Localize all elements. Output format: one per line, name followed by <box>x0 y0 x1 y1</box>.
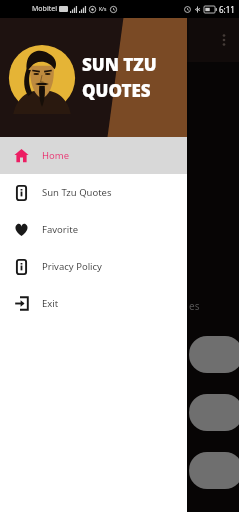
staticText: SUN TZU <box>82 53 157 76</box>
staticText: Exit <box>42 297 59 310</box>
button[interactable] <box>189 336 239 373</box>
staticText: Mobitel <box>32 4 57 14</box>
button[interactable] <box>189 394 239 431</box>
button[interactable]: Home <box>0 137 187 174</box>
button[interactable]: Favorite <box>0 211 187 248</box>
staticText: QUOTES <box>82 79 151 102</box>
staticText: es <box>189 299 200 313</box>
staticText: Sun Tzu Quotes <box>42 186 112 199</box>
button[interactable]: Sun Tzu Quotes <box>0 174 187 211</box>
button[interactable]: Privacy Policy <box>0 248 187 285</box>
button[interactable]: More options <box>212 28 236 52</box>
button[interactable]: Exit <box>0 285 187 322</box>
staticText: Privacy Policy <box>42 260 102 273</box>
staticText: K/s <box>99 6 107 13</box>
staticText: Favorite <box>42 223 78 236</box>
staticText: 6:11 <box>219 4 235 15</box>
staticText: Home <box>42 149 70 162</box>
button[interactable] <box>189 452 239 489</box>
